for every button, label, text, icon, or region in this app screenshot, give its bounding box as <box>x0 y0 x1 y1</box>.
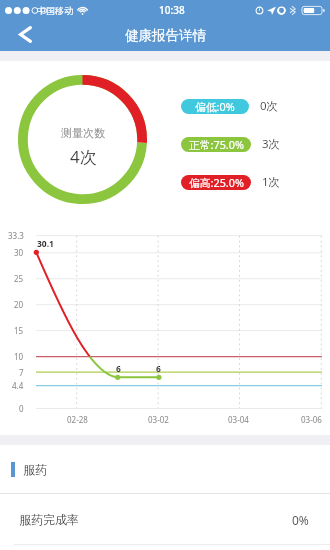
staticText: 0% <box>292 512 309 528</box>
staticText: 25 <box>14 273 24 284</box>
button[interactable]: 正常:75.0% <box>181 137 251 152</box>
staticText: 10 <box>14 351 24 362</box>
staticText: 10:38 <box>159 3 185 17</box>
staticText: 15 <box>14 325 24 336</box>
staticText: 中国移动 <box>37 5 73 16</box>
button[interactable]: 偏低:0% <box>181 99 249 114</box>
staticText: 30 <box>14 247 24 258</box>
staticText: 20 <box>14 299 24 310</box>
staticText: 服药完成率 <box>19 512 79 527</box>
staticText: 3次 <box>262 136 281 152</box>
staticText: 偏高:25.0% <box>189 175 244 190</box>
staticText: 03-02 <box>148 414 169 425</box>
staticText: 6 <box>116 363 121 375</box>
staticText: 03-06 <box>301 414 322 425</box>
staticText: 正常:75.0% <box>189 137 244 152</box>
staticText: 0 <box>19 403 24 414</box>
staticText: 33.3 <box>8 230 24 241</box>
staticText: 偏低:0% <box>195 99 235 114</box>
staticText: 6 <box>156 363 161 375</box>
staticText: 测量次数 <box>61 126 105 140</box>
staticText: 7 <box>19 367 24 378</box>
staticText: 4.4 <box>12 380 24 391</box>
staticText: 1次 <box>262 174 281 190</box>
staticText: 03-04 <box>228 414 249 425</box>
staticText: 30.1 <box>37 238 54 250</box>
button[interactable]: 服药完成率 <box>0 494 330 545</box>
staticText: 4次 <box>70 145 97 168</box>
staticText: 健康报告详情 <box>125 27 206 44</box>
staticText: 02-28 <box>67 414 88 425</box>
staticText: 服药 <box>23 462 47 477</box>
button[interactable]: Back <box>5 20 45 51</box>
button[interactable]: 偏高:25.0% <box>181 175 251 190</box>
staticText: 0次 <box>260 98 279 114</box>
